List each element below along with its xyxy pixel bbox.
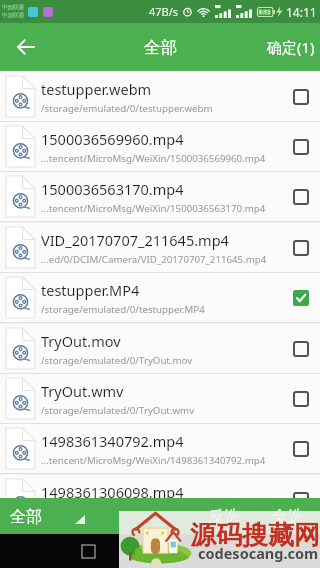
staticText: TryOut.wmv xyxy=(41,381,124,401)
button[interactable]: 1500036569960.mp4 xyxy=(0,122,320,172)
staticText: ...ed/0/DCIM/Camera/VID_20170707_211645.… xyxy=(41,253,267,266)
button[interactable]: Select file xyxy=(285,383,317,415)
staticText: 反选 xyxy=(208,507,240,527)
staticText: ...tencent/MicroMsg/WeiXin/1500036563170… xyxy=(41,202,266,215)
button[interactable]: Select file xyxy=(285,484,317,516)
button[interactable]: 全部 xyxy=(0,498,192,534)
staticText: /storage/emulated/0/TryOut.wmv xyxy=(41,404,195,417)
staticText: ...tencent/MicroMsg/WeiXin/1500036569960… xyxy=(41,152,266,165)
button[interactable]: 全选 xyxy=(256,498,320,534)
button[interactable]: 1498361340792.mp4 xyxy=(0,424,320,474)
staticText: codesocang.com xyxy=(198,543,319,563)
staticText: 14:11 xyxy=(286,4,317,20)
button[interactable]: Select file xyxy=(285,181,317,213)
staticText: 1498361340792.mp4 xyxy=(41,431,184,451)
button[interactable]: 反选 xyxy=(192,498,256,534)
staticText: ...tencent/MicroMsg/WeiXin/1498361306098… xyxy=(41,505,266,518)
staticText: 1500036563170.mp4 xyxy=(41,179,184,199)
staticText: 全部 xyxy=(144,37,177,58)
staticText: 全部 xyxy=(10,507,42,527)
button[interactable]: Select file xyxy=(285,81,317,113)
staticText: ...tencent/MicroMsg/WeiXin/1498361340792… xyxy=(41,454,266,467)
button[interactable]: VID_20170707_211645.mp4 xyxy=(0,223,320,273)
staticText: /storage/emulated/0/TryOut.mov xyxy=(41,354,193,367)
staticText: 确定(1) xyxy=(267,37,315,57)
staticText: 中国联通 xyxy=(2,12,24,19)
button[interactable]: 确定(1) xyxy=(259,23,320,71)
staticText: TryOut.mov xyxy=(41,331,121,351)
button[interactable]: testupper.webm xyxy=(0,72,320,122)
staticText: VID_20170707_211645.mp4 xyxy=(41,230,229,250)
button[interactable]: testupper.MP4 xyxy=(0,273,320,323)
staticText: /storage/emulated/0/testupper.webm xyxy=(41,102,213,115)
button[interactable]: Select file xyxy=(285,433,317,465)
staticText: 1498361306098.mp4 xyxy=(41,482,184,502)
staticText: testupper.webm xyxy=(41,79,152,99)
button[interactable]: Home xyxy=(82,545,95,558)
staticText: 1500036569960.mp4 xyxy=(41,129,184,149)
button[interactable]: Select file xyxy=(285,333,317,365)
staticText: 47B/s xyxy=(149,4,179,19)
button[interactable]: Select file xyxy=(285,282,317,314)
staticText: 全选 xyxy=(272,507,304,527)
button[interactable]: TryOut.mov xyxy=(0,324,320,374)
button[interactable]: 1500036563170.mp4 xyxy=(0,172,320,222)
button[interactable]: 1498361306098.mp4 xyxy=(0,475,320,525)
button[interactable]: Back xyxy=(9,31,41,63)
staticText: 83 xyxy=(261,7,270,17)
staticText: 中国联通 xyxy=(2,4,24,11)
staticText: 源码搜藏网 xyxy=(190,519,320,552)
button[interactable]: TryOut.wmv xyxy=(0,374,320,424)
button[interactable]: Select file xyxy=(285,232,317,264)
staticText: /storage/emulated/0/testupper.MP4 xyxy=(41,303,205,316)
button[interactable]: Select file xyxy=(285,131,317,163)
staticText: testupper.MP4 xyxy=(41,280,140,300)
